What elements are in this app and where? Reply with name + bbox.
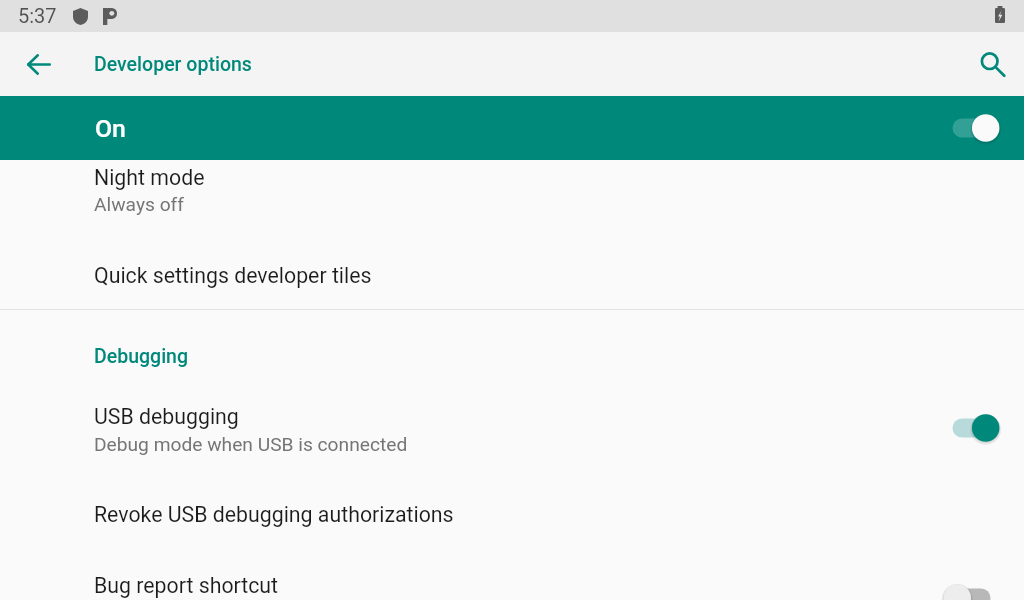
staticText: 5:37 [18,4,57,27]
staticText: Debug mode when USB is connected [94,433,408,456]
staticText: Quick settings developer tiles [94,263,372,288]
staticText: Night mode [94,165,205,190]
button[interactable]: USB debugging [0,400,1024,470]
staticText: Developer options [94,53,252,76]
staticText: Bug report shortcut [94,573,279,598]
button[interactable]: On [0,96,1024,160]
staticText: Always off [94,193,184,216]
button[interactable]: Toggle USB debugging [943,413,1000,443]
button[interactable]: Quick settings developer tiles [0,259,1024,310]
button[interactable]: Bug report shortcut [0,569,1024,600]
button[interactable]: Revoke USB debugging authorizations [0,498,1024,549]
button[interactable]: Toggle developer options [943,113,1000,143]
button[interactable]: Toggle Bug report shortcut [943,583,1000,600]
staticText: On [95,114,126,143]
staticText: Revoke USB debugging authorizations [94,502,454,527]
staticText: USB debugging [94,404,239,429]
button[interactable]: Night mode [0,161,1024,259]
staticText: Debugging [94,345,189,368]
button[interactable]: Search [960,32,1024,96]
button[interactable]: Back [0,32,64,96]
